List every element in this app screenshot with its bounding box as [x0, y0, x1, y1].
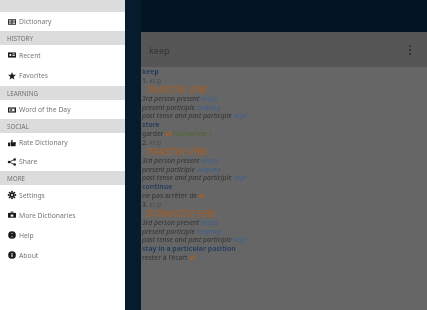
staticText: garder vt (conserver ) — [142, 129, 212, 138]
staticText: ne pas arrêter de vi — [142, 191, 205, 200]
staticText: Rate Dictionary — [19, 138, 68, 147]
staticText: keep — [142, 67, 159, 76]
staticText: present participle keeping — [142, 227, 221, 236]
staticText: rester à l'écart vi — [142, 253, 195, 262]
staticText: HISTORY — [7, 34, 34, 43]
staticText: MORE — [7, 174, 26, 183]
staticText: 3rd person present keeps — [142, 156, 219, 165]
button[interactable]: Word of the Day — [0, 100, 141, 119]
staticText: Word of the Day — [19, 105, 71, 114]
staticText: About — [19, 251, 39, 260]
staticText: 3rd person present keeps — [142, 218, 219, 227]
staticText: 1. kiːp — [142, 76, 162, 85]
staticText: More Dictionaries — [19, 211, 76, 220]
staticText: store — [142, 120, 160, 129]
staticText: SOCIAL — [7, 122, 29, 131]
staticText: INTRANSITIVE VERB — [142, 208, 215, 219]
button[interactable]: More options — [399, 39, 421, 61]
staticText: continue — [142, 182, 173, 191]
button[interactable]: More Dictionaries — [0, 205, 141, 225]
button[interactable]: Favorites — [0, 65, 141, 86]
staticText: past tense and past participle kept — [142, 173, 247, 182]
staticText: TRANSITIVE VERB — [142, 84, 207, 95]
staticText: Favorites — [19, 71, 49, 80]
button[interactable]: Dictionary — [0, 12, 141, 31]
staticText: LEARNING — [7, 89, 39, 98]
button[interactable]: Recent — [0, 45, 141, 65]
staticText: Dictionary — [19, 17, 52, 26]
staticText: Share — [19, 157, 38, 166]
staticText: past tense and past participle kept — [142, 235, 247, 244]
staticText: 3. kiːp — [142, 200, 162, 209]
staticText: present participle keeping — [142, 103, 221, 112]
staticText: 3rd person present keeps — [142, 94, 219, 103]
staticText: present participle keeping — [142, 165, 221, 174]
button[interactable]: Rate Dictionary — [0, 133, 141, 152]
staticText: 2. kiːp — [142, 138, 162, 147]
staticText: keep — [149, 44, 170, 56]
staticText: TRANSITIVE VERB — [142, 146, 207, 157]
button[interactable]: Settings — [0, 185, 141, 205]
staticText: Recent — [19, 51, 41, 60]
staticText: past tense and past participle kept — [142, 111, 247, 120]
button[interactable]: About — [0, 245, 141, 265]
button[interactable]: Share — [0, 152, 141, 171]
button[interactable]: Help — [0, 225, 141, 245]
staticText: Help — [19, 231, 34, 240]
staticText: stay in a particular position — [142, 244, 236, 253]
staticText: Settings — [19, 191, 45, 200]
